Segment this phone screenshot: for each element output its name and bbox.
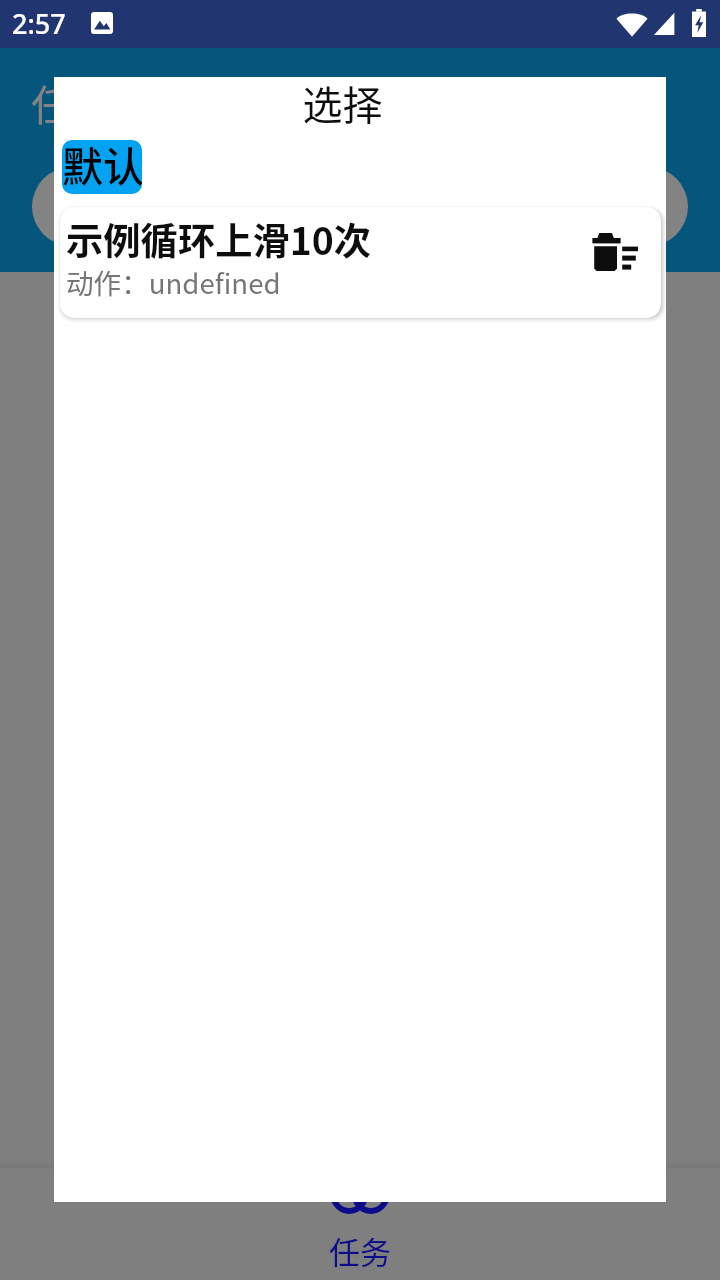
staticText: 选择: [54, 74, 631, 132]
staticText: 2:57: [12, 5, 66, 42]
staticText: 任务: [329, 1228, 391, 1273]
staticText: 默认: [62, 140, 142, 188]
staticText: 任务: [31, 72, 116, 133]
other: Wi-Fi: [616, 11, 648, 37]
other: Filter: [632, 187, 672, 227]
staticText: 示例循环上滑10次: [66, 212, 372, 266]
button[interactable]: 示例循环上滑10次: [60, 207, 661, 318]
button[interactable]: 默认: [62, 140, 142, 194]
other: Screenshot: [91, 12, 113, 35]
button[interactable]: Filter: [32, 167, 688, 246]
button[interactable]: 任务: [270, 1176, 450, 1273]
other: Mobile signal: [653, 12, 676, 37]
button[interactable]: Delete all: [587, 217, 643, 287]
other: Battery charging: [692, 9, 706, 37]
staticText: 动作：undefined: [66, 262, 281, 302]
